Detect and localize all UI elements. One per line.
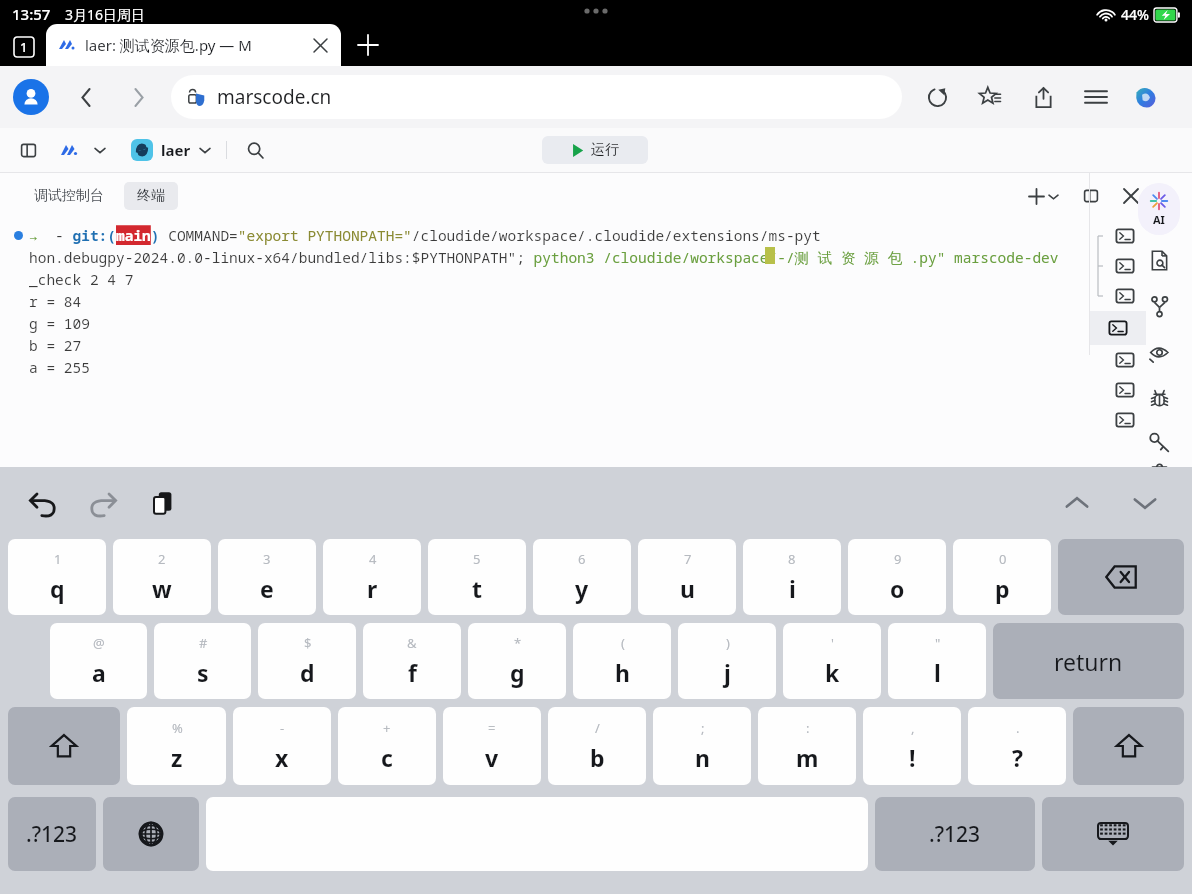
button[interactable]: Forward bbox=[119, 78, 157, 116]
button[interactable]: .?123 bbox=[875, 797, 1035, 871]
staticText: .?123 bbox=[929, 820, 981, 849]
button[interactable]: 9 bbox=[848, 539, 946, 615]
button[interactable]: Add bookmark bbox=[973, 80, 1007, 114]
button[interactable]: ; bbox=[653, 707, 751, 785]
staticText: a bbox=[92, 657, 106, 688]
button[interactable]: Share bbox=[1026, 80, 1060, 114]
button[interactable]: = bbox=[443, 707, 541, 785]
button[interactable]: ) bbox=[678, 623, 776, 699]
button[interactable]: @ bbox=[50, 623, 147, 699]
button[interactable]: Terminal instance bbox=[1115, 412, 1135, 428]
staticText: q bbox=[50, 573, 65, 604]
staticText: 终端 bbox=[137, 187, 165, 205]
button[interactable]: 0 bbox=[953, 539, 1051, 615]
staticText: n bbox=[695, 742, 710, 773]
staticText: v bbox=[485, 742, 499, 773]
staticText: → - git:(main) COMMAND="export PYTHONPAT… bbox=[29, 225, 821, 245]
button[interactable]: Redo bbox=[80, 480, 126, 526]
button[interactable]: 调试控制台 bbox=[24, 182, 114, 210]
button[interactable]: laer: 测试资源包.py — M bbox=[46, 24, 341, 66]
button[interactable]: Shift bbox=[1073, 707, 1184, 785]
button[interactable]: Search bbox=[241, 136, 269, 164]
button[interactable]: Terminal instance bbox=[1115, 228, 1135, 244]
button[interactable]: laer bbox=[129, 139, 212, 161]
button[interactable]: Undo bbox=[20, 480, 66, 526]
button[interactable]: , bbox=[863, 707, 961, 785]
button[interactable]: 6 bbox=[533, 539, 631, 615]
button[interactable]: " bbox=[888, 623, 986, 699]
button[interactable]: % bbox=[127, 707, 226, 785]
staticText: 4 bbox=[369, 550, 377, 568]
button[interactable]: Terminal instance bbox=[1115, 352, 1135, 368]
button[interactable]: Terminal instance bbox=[1115, 288, 1135, 304]
button[interactable]: Copilot bbox=[1129, 80, 1163, 114]
button[interactable]: 终端 bbox=[124, 182, 178, 210]
button[interactable]: - bbox=[233, 707, 331, 785]
staticText: f bbox=[408, 657, 417, 688]
staticText: 1 bbox=[20, 38, 28, 56]
staticText: 7 bbox=[684, 550, 692, 568]
button[interactable]: Hide keyboard bbox=[1042, 797, 1184, 871]
staticText: r = 84 bbox=[29, 291, 82, 311]
button[interactable]: Debug bbox=[1142, 381, 1176, 415]
button[interactable]: # bbox=[154, 623, 251, 699]
button[interactable]: Change language bbox=[103, 797, 199, 871]
button[interactable]: Split terminal bbox=[1078, 183, 1104, 209]
button[interactable]: & bbox=[363, 623, 461, 699]
button[interactable]: New tab bbox=[355, 32, 381, 58]
button[interactable]: 3 bbox=[218, 539, 316, 615]
button[interactable]: Paste bbox=[140, 480, 186, 526]
button[interactable]: Next bbox=[1122, 480, 1168, 526]
staticText: o bbox=[890, 573, 905, 604]
staticText: c bbox=[381, 742, 393, 773]
button[interactable]: Menu bbox=[1079, 80, 1113, 114]
staticText: y bbox=[575, 573, 589, 604]
button[interactable]: .?123 bbox=[8, 797, 96, 871]
staticText: t bbox=[472, 573, 482, 604]
button[interactable]: . bbox=[968, 707, 1066, 785]
button[interactable]: return bbox=[993, 623, 1184, 699]
button[interactable]: Source control bbox=[1142, 289, 1176, 323]
button[interactable]: Terminal instance bbox=[1115, 258, 1135, 274]
button[interactable]: Profile bbox=[13, 79, 49, 115]
button[interactable]: ( bbox=[573, 623, 671, 699]
staticText: d bbox=[300, 657, 315, 688]
staticText: * bbox=[514, 634, 522, 652]
button[interactable]: : bbox=[758, 707, 856, 785]
button[interactable]: + bbox=[338, 707, 436, 785]
staticText: h bbox=[615, 657, 630, 688]
button[interactable]: 2 bbox=[113, 539, 211, 615]
button[interactable]: 4 bbox=[323, 539, 421, 615]
button[interactable]: Secrets bbox=[1142, 425, 1176, 459]
button[interactable]: 1 bbox=[8, 539, 106, 615]
button[interactable]: Preview bbox=[1142, 335, 1176, 369]
button[interactable]: Toggle sidebar bbox=[14, 136, 42, 164]
button[interactable]: Shift bbox=[8, 707, 120, 785]
button[interactable]: Search files bbox=[1142, 243, 1176, 277]
button[interactable]: New terminal bbox=[1025, 189, 1062, 204]
staticText: 5 bbox=[473, 550, 481, 568]
button[interactable]: Back bbox=[67, 78, 105, 116]
staticText: # bbox=[199, 634, 208, 652]
button[interactable]: Close panel bbox=[1118, 183, 1144, 209]
staticText: laer: 测试资源包.py — M bbox=[85, 35, 252, 55]
button[interactable]: * bbox=[468, 623, 566, 699]
button[interactable]: marscode.cn bbox=[171, 75, 902, 119]
button[interactable]: 运行 bbox=[542, 136, 648, 164]
button[interactable]: 7 bbox=[638, 539, 736, 615]
button[interactable]: 5 bbox=[428, 539, 526, 615]
button[interactable]: 8 bbox=[743, 539, 841, 615]
button[interactable]: / bbox=[548, 707, 646, 785]
button[interactable]: Reload bbox=[920, 80, 954, 114]
button[interactable]: AI assistant bbox=[1138, 183, 1180, 235]
button[interactable]: Backspace bbox=[1058, 539, 1184, 615]
button[interactable]: Previous bbox=[1054, 480, 1100, 526]
button[interactable]: Close tab bbox=[309, 34, 331, 56]
button[interactable]: ' bbox=[783, 623, 881, 699]
button[interactable]: Terminal instance bbox=[1115, 382, 1135, 398]
button[interactable]: Tab count bbox=[12, 35, 36, 59]
button[interactable]: $ bbox=[258, 623, 356, 699]
button[interactable] bbox=[58, 142, 107, 158]
staticText: ? bbox=[1012, 742, 1023, 773]
